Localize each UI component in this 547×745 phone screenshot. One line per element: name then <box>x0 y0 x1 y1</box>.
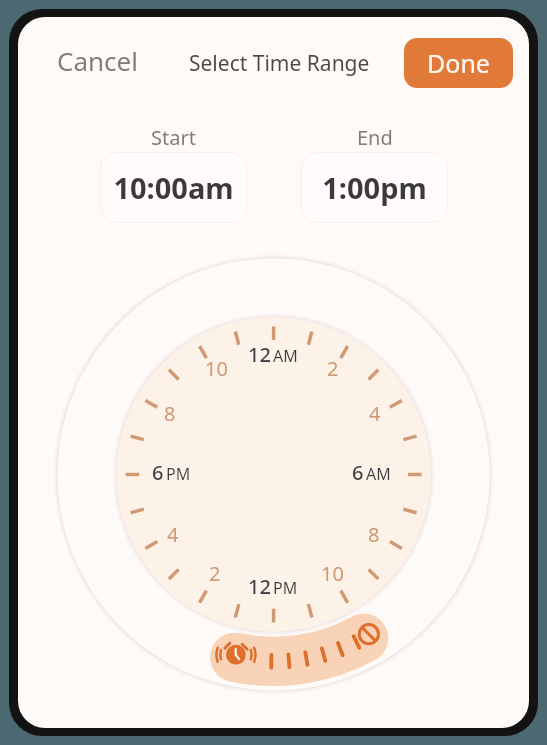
staticText: Done <box>427 46 490 80</box>
staticText: Cancel <box>57 43 138 78</box>
staticText: End <box>357 124 393 151</box>
staticText: AM <box>273 345 298 367</box>
button[interactable]: 1:00pm <box>301 152 448 223</box>
staticText: 10 <box>321 560 344 587</box>
staticText: AM <box>366 463 391 485</box>
staticText: 10 <box>205 355 228 382</box>
button[interactable]: Cancel <box>18 30 177 91</box>
staticText: Select Time Range <box>189 49 370 78</box>
staticText: 12 <box>248 573 271 600</box>
staticText: 6 <box>352 459 364 486</box>
staticText: 8 <box>164 400 176 427</box>
staticText: 4 <box>167 521 179 548</box>
staticText: 4 <box>369 400 381 427</box>
staticText: 1:00pm <box>322 168 427 207</box>
button[interactable]: Done <box>404 38 513 88</box>
staticText: 12 <box>248 341 271 368</box>
staticText: PM <box>273 577 298 599</box>
staticText: PM <box>166 463 191 485</box>
staticText: 2 <box>327 355 339 382</box>
staticText: 2 <box>209 560 221 587</box>
button[interactable]: 10:00am <box>100 152 247 223</box>
staticText: 10:00am <box>113 168 234 207</box>
staticText: 6 <box>152 459 164 486</box>
staticText: Start <box>151 124 196 151</box>
staticText: 8 <box>368 521 380 548</box>
